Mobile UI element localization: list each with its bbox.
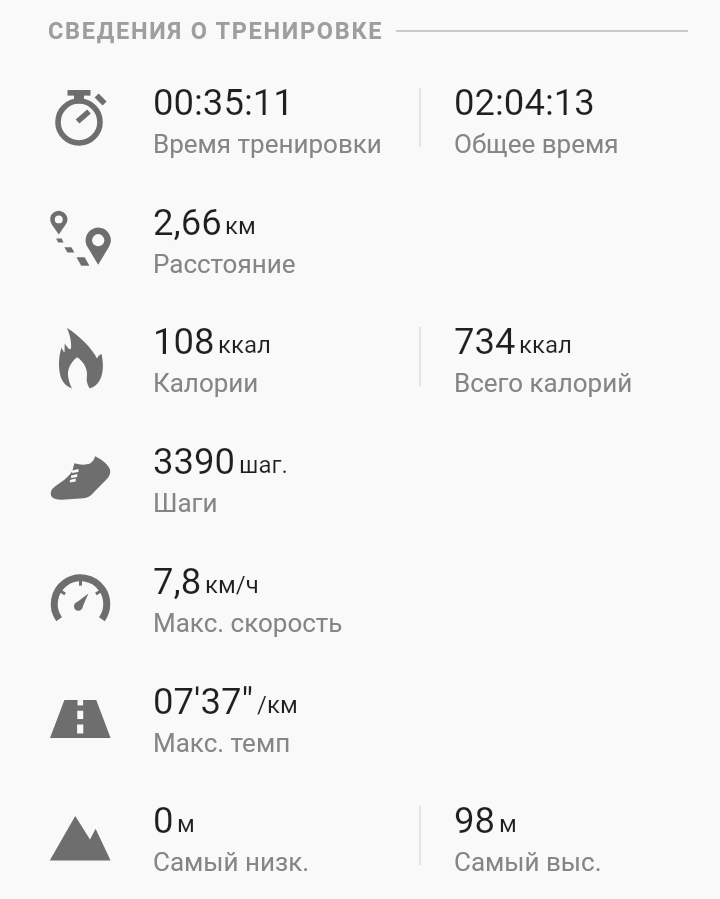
staticText: ккал: [519, 331, 572, 359]
staticText: шаг.: [239, 451, 288, 479]
staticText: 108: [153, 320, 215, 363]
other: Elevation: [48, 804, 120, 876]
staticText: Всего калорий: [454, 368, 633, 398]
other: Distance: [48, 206, 120, 278]
staticText: 0: [153, 799, 174, 842]
staticText: Расстояние: [153, 249, 296, 279]
staticText: 7,8: [153, 560, 202, 603]
staticText: км/ч: [205, 571, 259, 599]
staticText: 02:04:13: [454, 81, 595, 124]
staticText: 2,66: [153, 201, 222, 244]
staticText: Время тренировки: [153, 129, 382, 159]
staticText: Калории: [153, 368, 259, 398]
staticText: 07'37": [153, 680, 254, 723]
button[interactable]: СВЕДЕНИЯ О ТРЕНИРОВКЕ: [0, 8, 720, 54]
staticText: Макс. скорость: [153, 608, 343, 638]
other: Maximum pace: [48, 687, 120, 759]
other: Maximum speed: [48, 566, 120, 638]
button[interactable]: Maximum speed: [0, 519, 720, 639]
other: Steps: [48, 446, 120, 518]
button[interactable]: Maximum pace: [0, 639, 720, 759]
staticText: Самый низк.: [153, 847, 310, 877]
button[interactable]: Calories: [0, 279, 720, 399]
staticText: км: [225, 212, 256, 240]
staticText: ккал: [218, 331, 271, 359]
staticText: 98: [454, 799, 496, 842]
button[interactable]: Steps: [0, 399, 720, 519]
staticText: Самый выс.: [454, 847, 602, 877]
staticText: м: [499, 810, 517, 838]
staticText: /км: [257, 691, 298, 719]
staticText: Общее время: [454, 129, 619, 159]
staticText: Макс. темп: [153, 728, 291, 758]
button[interactable]: Distance: [0, 160, 720, 280]
other: Calories: [48, 326, 120, 398]
staticText: Шаги: [153, 488, 218, 518]
button[interactable]: Elevation: [0, 758, 720, 878]
button[interactable]: Workout duration: [0, 40, 720, 160]
staticText: 00:35:11: [153, 81, 294, 124]
other: Workout duration: [48, 86, 120, 158]
staticText: 734: [454, 320, 516, 363]
staticText: СВЕДЕНИЯ О ТРЕНИРОВКЕ: [48, 17, 384, 45]
staticText: 3390: [153, 440, 236, 483]
staticText: м: [177, 810, 195, 838]
